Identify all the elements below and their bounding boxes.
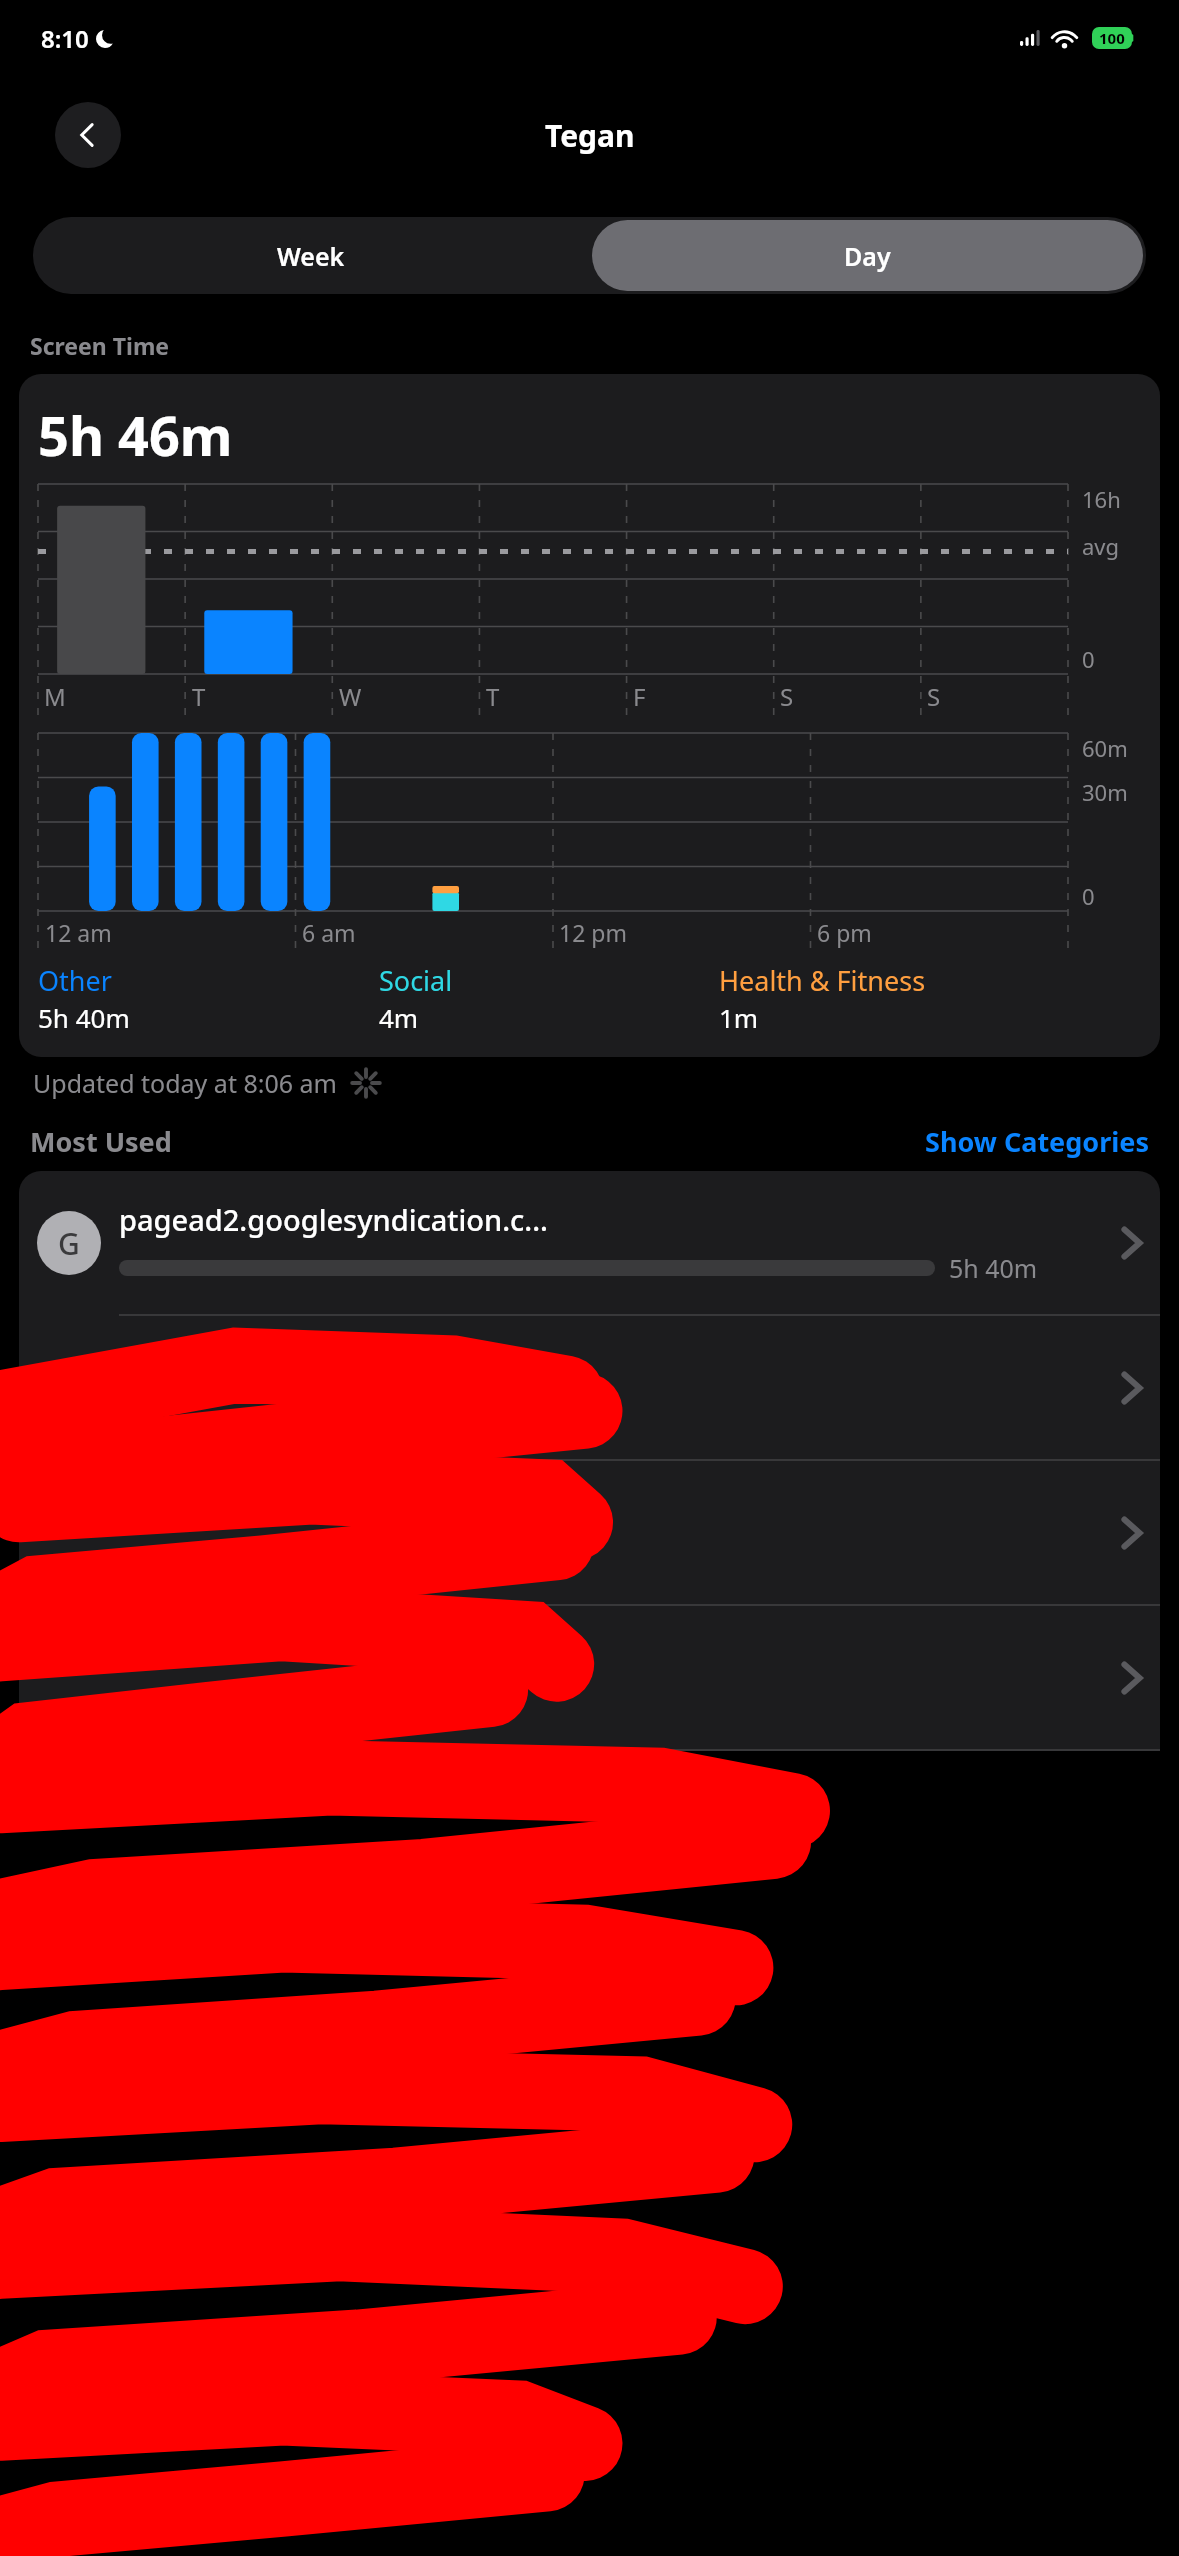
staticText: T: [486, 680, 500, 713]
button[interactable]: [19, 1316, 1160, 1461]
staticText: S: [927, 680, 941, 713]
staticText: Show Categories: [925, 1123, 1149, 1160]
staticText: Week: [277, 239, 345, 273]
staticText: Other: [38, 962, 112, 999]
staticText: Screen Time: [30, 330, 170, 361]
button[interactable]: [19, 1461, 1160, 1606]
staticText: 5h 46m: [38, 398, 233, 472]
button[interactable]: Show Categories: [925, 1123, 1149, 1160]
staticText: 30m: [1082, 777, 1128, 807]
button[interactable]: 5h 46m: [19, 374, 1160, 1057]
staticText: 6 am: [302, 917, 356, 948]
staticText: 5h 40m: [38, 1000, 130, 1035]
staticText: 0: [1082, 644, 1095, 674]
button[interactable]: [19, 1606, 1160, 1751]
button[interactable]: Week: [33, 217, 589, 294]
staticText: Day: [844, 239, 891, 273]
staticText: 1m: [719, 1000, 759, 1035]
staticText: W: [339, 680, 362, 713]
staticText: 60m: [1082, 733, 1128, 763]
staticText: Health & Fitness: [719, 962, 926, 999]
staticText: Social: [379, 962, 453, 999]
staticText: 6 pm: [817, 917, 872, 948]
staticText: T: [192, 680, 206, 713]
staticText: M: [44, 680, 66, 713]
button[interactable]: G: [19, 1171, 1160, 1316]
staticText: F: [633, 680, 646, 713]
staticText: 12 am: [45, 917, 112, 948]
staticText: Tegan: [545, 115, 635, 156]
button[interactable]: Back: [55, 102, 121, 168]
staticText: pagead2.googlesyndication.c...: [119, 1200, 548, 1239]
staticText: G: [58, 1223, 80, 1264]
staticText: 0: [1082, 881, 1095, 911]
staticText: avg: [1082, 531, 1120, 561]
staticText: Updated today at 8:06 am: [33, 1066, 337, 1100]
staticText: S: [780, 680, 794, 713]
staticText: 100: [1099, 28, 1125, 48]
staticText: 5h 40m: [949, 1251, 1038, 1285]
staticText: Most Used: [30, 1123, 172, 1160]
button[interactable]: Day: [592, 220, 1143, 291]
staticText: 8:10: [41, 22, 89, 55]
staticText: 4m: [379, 1000, 419, 1035]
staticText: 12 pm: [559, 917, 627, 948]
staticText: 16h: [1082, 484, 1121, 514]
